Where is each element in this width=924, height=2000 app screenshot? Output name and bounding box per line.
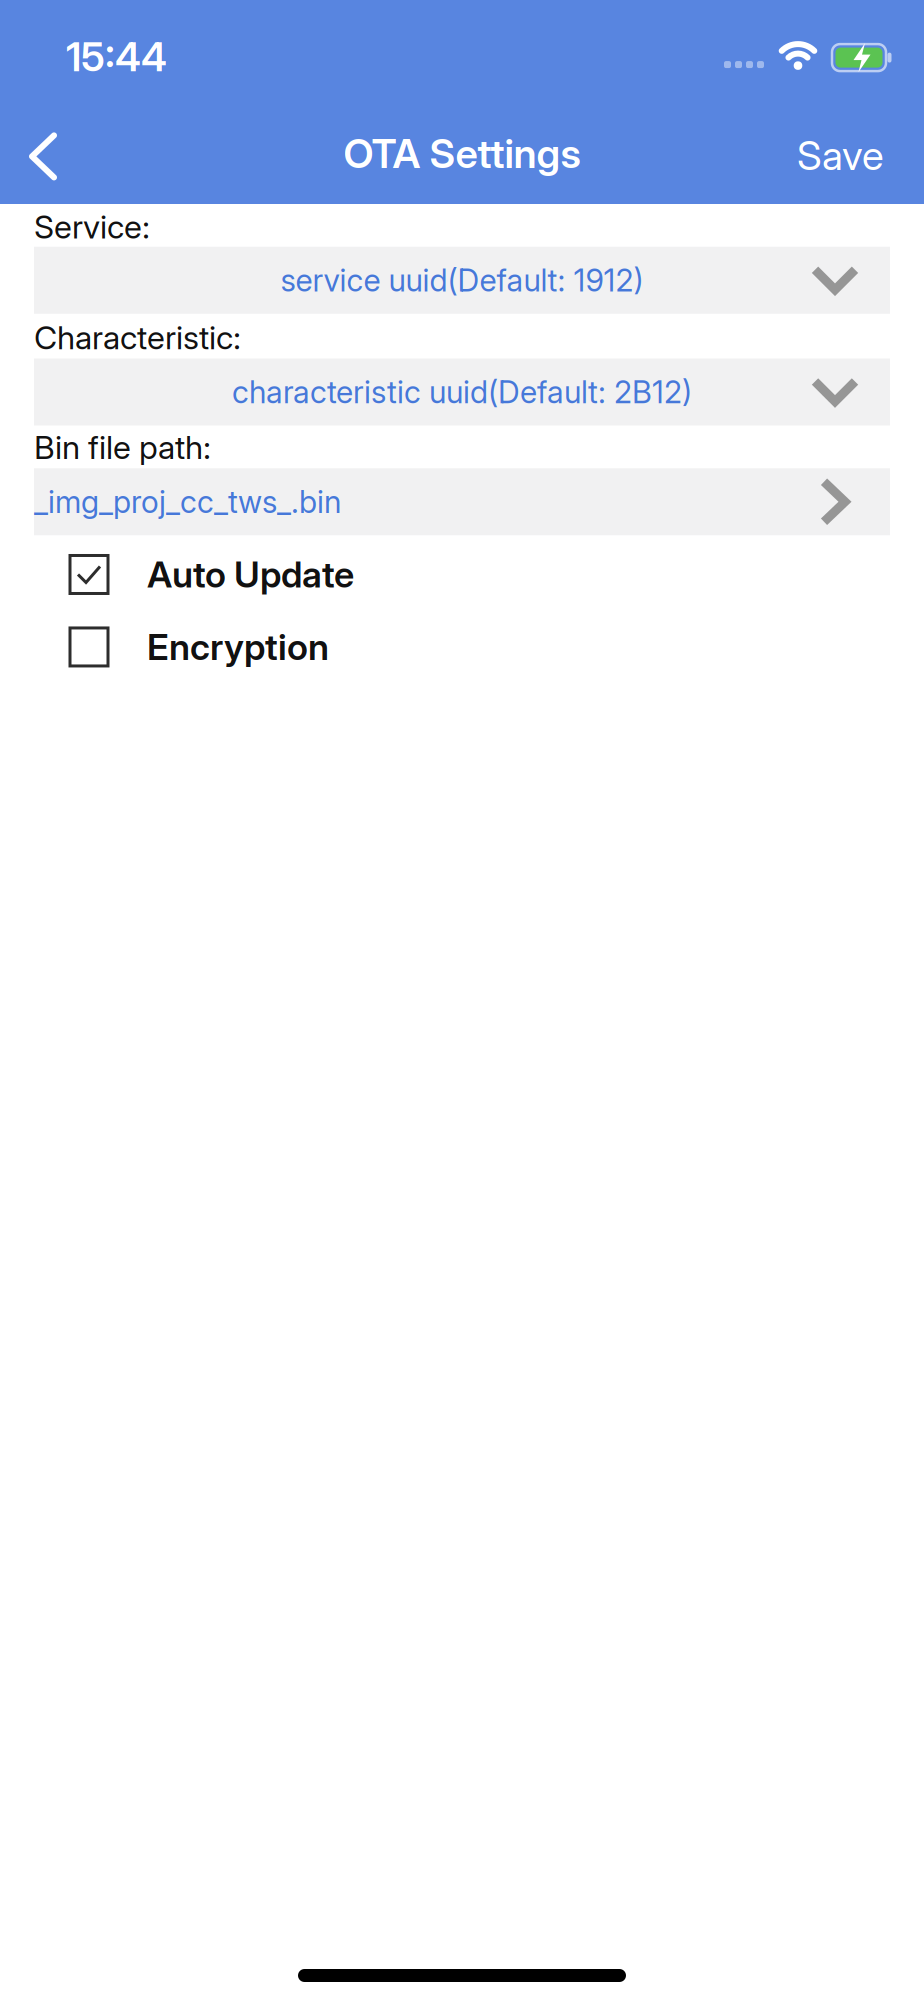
button[interactable]: service uuid(Default: 1912): [34, 247, 890, 314]
staticText: Save: [797, 132, 884, 179]
staticText: Bin file path:: [34, 428, 211, 466]
button[interactable]: Auto Update: [34, 553, 890, 596]
staticText: Service:: [34, 208, 150, 246]
staticText: _img_proj_cc_tws_.bin: [34, 484, 341, 520]
staticText: 15:44: [66, 33, 167, 80]
staticText: OTA Settings: [343, 130, 580, 177]
button[interactable]: Encryption: [34, 626, 890, 668]
button[interactable]: characteristic uuid(Default: 2B12): [34, 358, 890, 425]
staticText: service uuid(Default: 1912): [280, 262, 643, 298]
staticText: Characteristic:: [34, 319, 241, 357]
button[interactable]: _img_proj_cc_tws_.bin: [34, 468, 890, 535]
staticText: Auto Update: [147, 553, 354, 596]
button[interactable]: Back: [0, 130, 77, 176]
staticText: Encryption: [147, 626, 329, 668]
button[interactable]: Save: [797, 130, 924, 177]
staticText: characteristic uuid(Default: 2B12): [232, 374, 692, 410]
